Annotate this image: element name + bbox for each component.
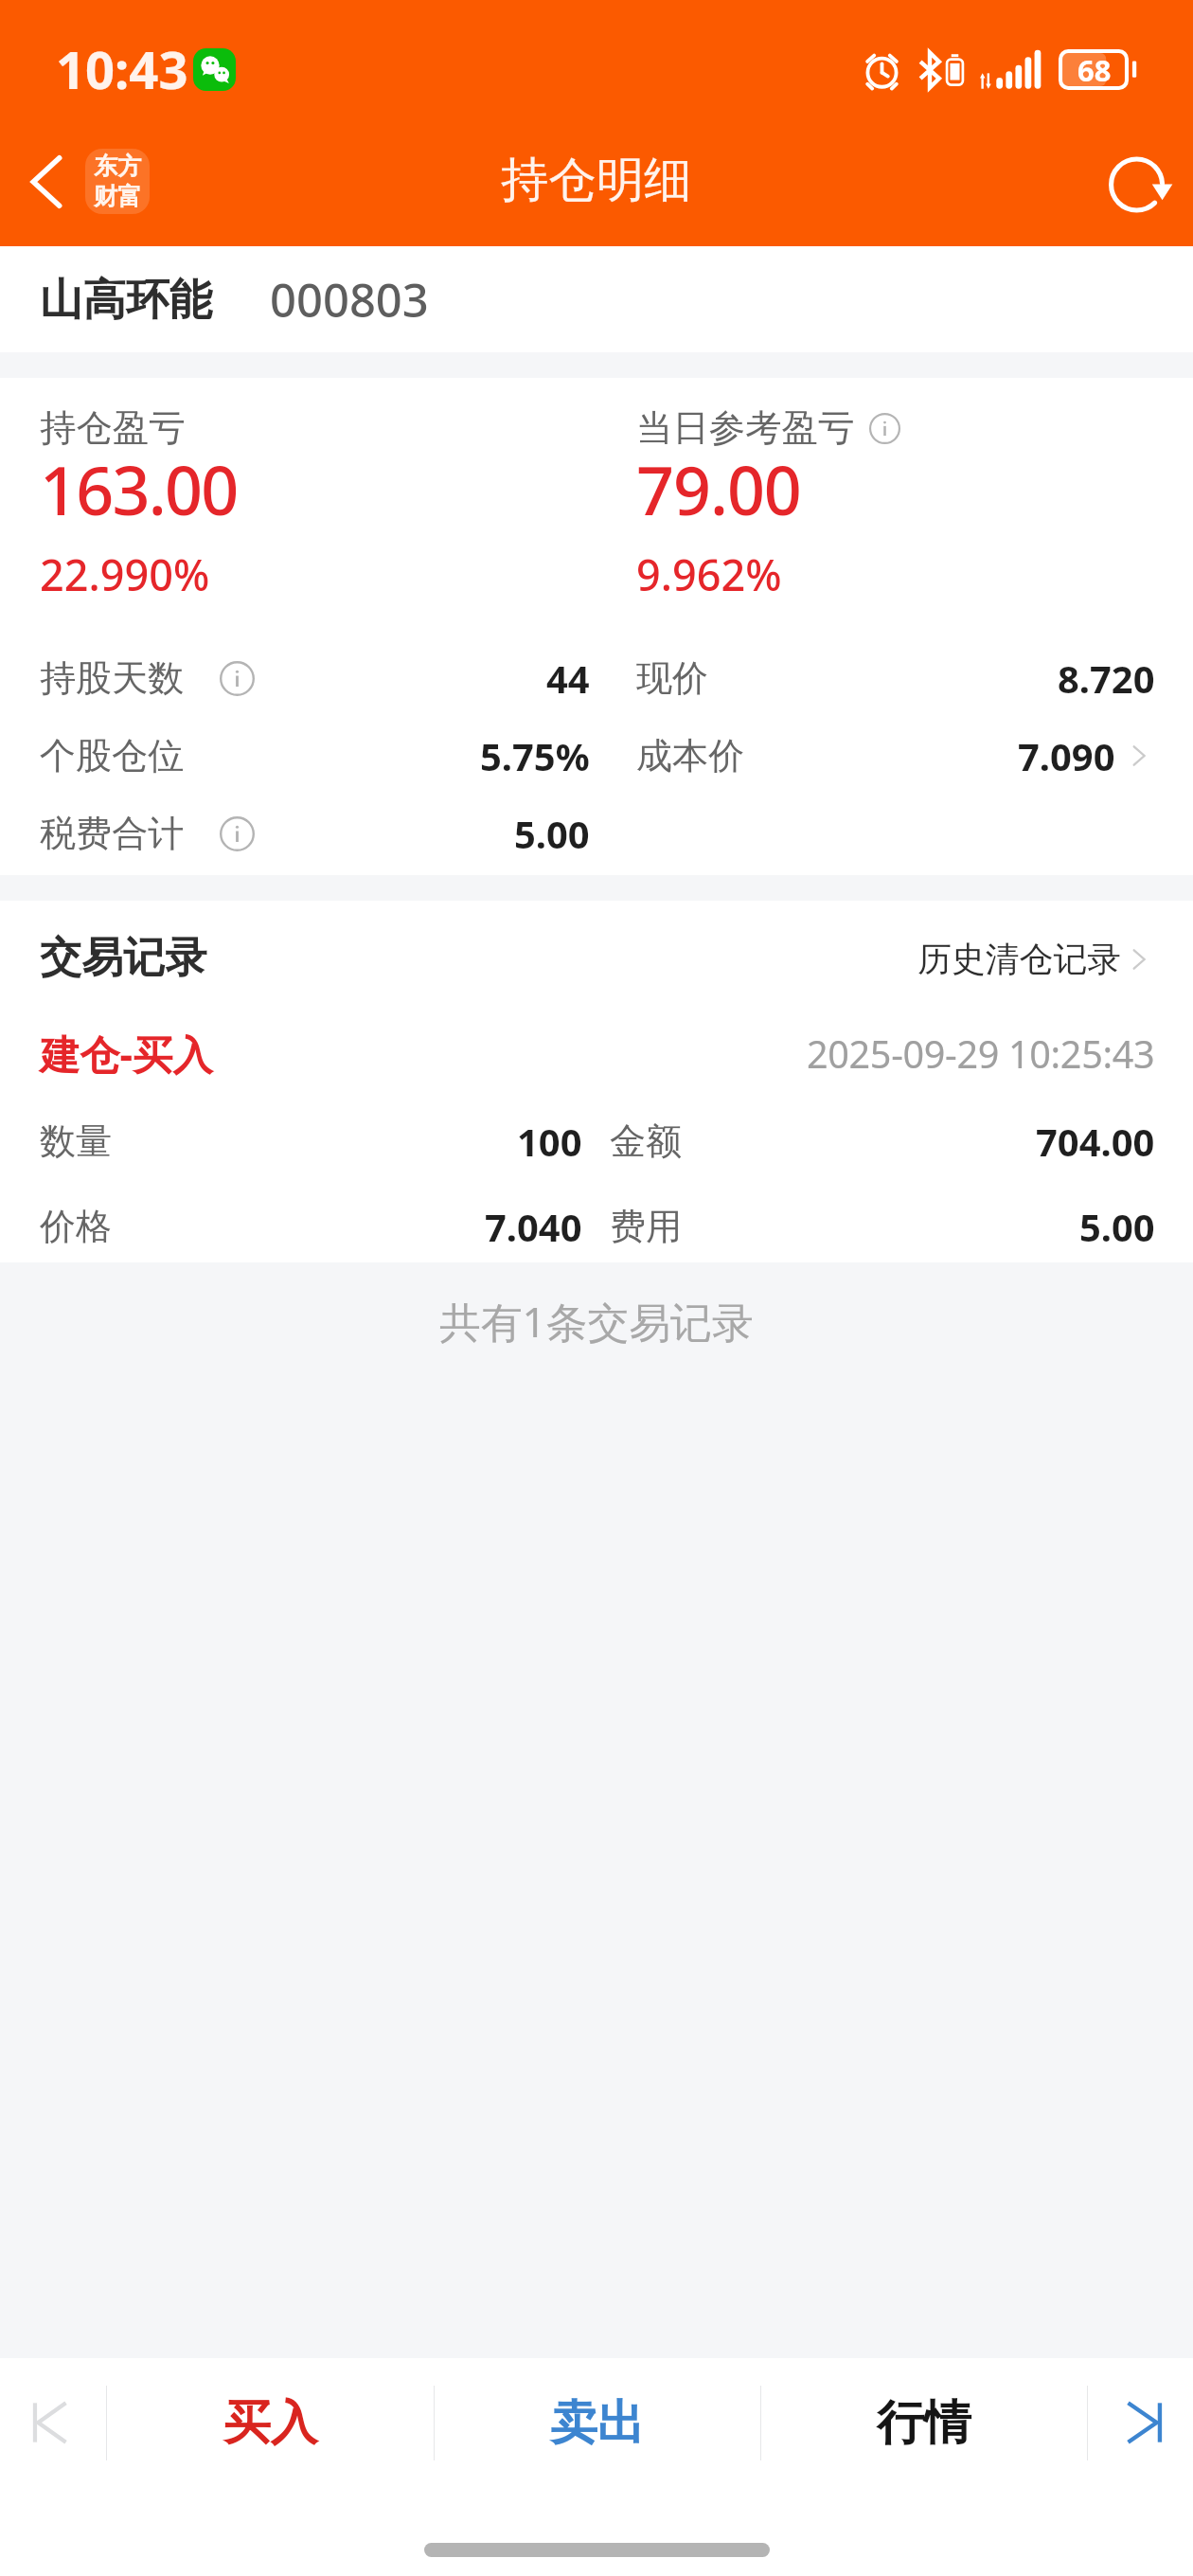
staticText: 7.040 (485, 1201, 582, 1252)
button[interactable]: Previous stock (0, 2358, 106, 2487)
staticText: 费用 (610, 1204, 683, 1249)
staticText: 持仓盈亏 (40, 405, 186, 451)
staticText: 金额 (610, 1118, 683, 1164)
staticText: 行情 (877, 2393, 971, 2453)
staticText: 704.00 (1036, 1116, 1155, 1167)
staticText: 10:43 (56, 34, 188, 104)
staticText: 44 (546, 653, 590, 704)
staticText: 7.090 (1018, 730, 1115, 781)
button[interactable]: Back (0, 128, 91, 236)
staticText: 79.00 (636, 444, 801, 528)
staticText: 个股仓位 (40, 733, 185, 778)
staticText: 当日参考盈亏 (636, 405, 855, 451)
staticText: 建仓-买入 (40, 1027, 213, 1082)
staticText: 5.00 (1079, 1201, 1155, 1252)
staticText: 价格 (40, 1204, 113, 1249)
staticText: 卖出 (550, 2393, 645, 2453)
button[interactable]: 历史清仓记录 (917, 938, 1155, 980)
staticText: 现价 (636, 655, 709, 701)
staticText: 000803 (270, 268, 429, 331)
staticText: 数量 (40, 1118, 113, 1164)
staticText: 持仓明细 (501, 150, 692, 209)
staticText: 交易记录 (40, 932, 207, 985)
button[interactable]: 东方 (85, 149, 150, 214)
staticText: 共有1条交易记录 (439, 1293, 754, 1350)
button[interactable]: 买入 (107, 2358, 434, 2487)
button[interactable]: 山高环能 (0, 246, 1193, 352)
staticText: 5.00 (514, 808, 590, 859)
staticText: 税费合计 (40, 811, 185, 856)
button[interactable]: Refresh (1091, 128, 1193, 241)
staticText: 买入 (223, 2393, 318, 2453)
staticText: 100 (517, 1116, 582, 1167)
staticText: 东方 (94, 152, 142, 182)
staticText: 历史清仓记录 (917, 938, 1122, 980)
button[interactable]: 卖出 (435, 2358, 760, 2487)
staticText: 163.00 (40, 444, 238, 528)
staticText: 山高环能 (40, 273, 213, 327)
staticText: 2025-09-29 10:25:43 (807, 1029, 1155, 1080)
staticText: 5.75% (480, 730, 590, 781)
staticText: 持股天数 (40, 655, 185, 701)
staticText: 成本价 (636, 733, 745, 778)
staticText: 8.720 (1058, 653, 1155, 704)
staticText: 68 (1077, 50, 1112, 90)
staticText: 财富 (94, 182, 142, 212)
staticText: 22.990% (40, 546, 210, 603)
staticText: 9.962% (636, 546, 782, 603)
button[interactable]: Next stock (1088, 2358, 1193, 2487)
button[interactable]: 行情 (761, 2358, 1087, 2487)
